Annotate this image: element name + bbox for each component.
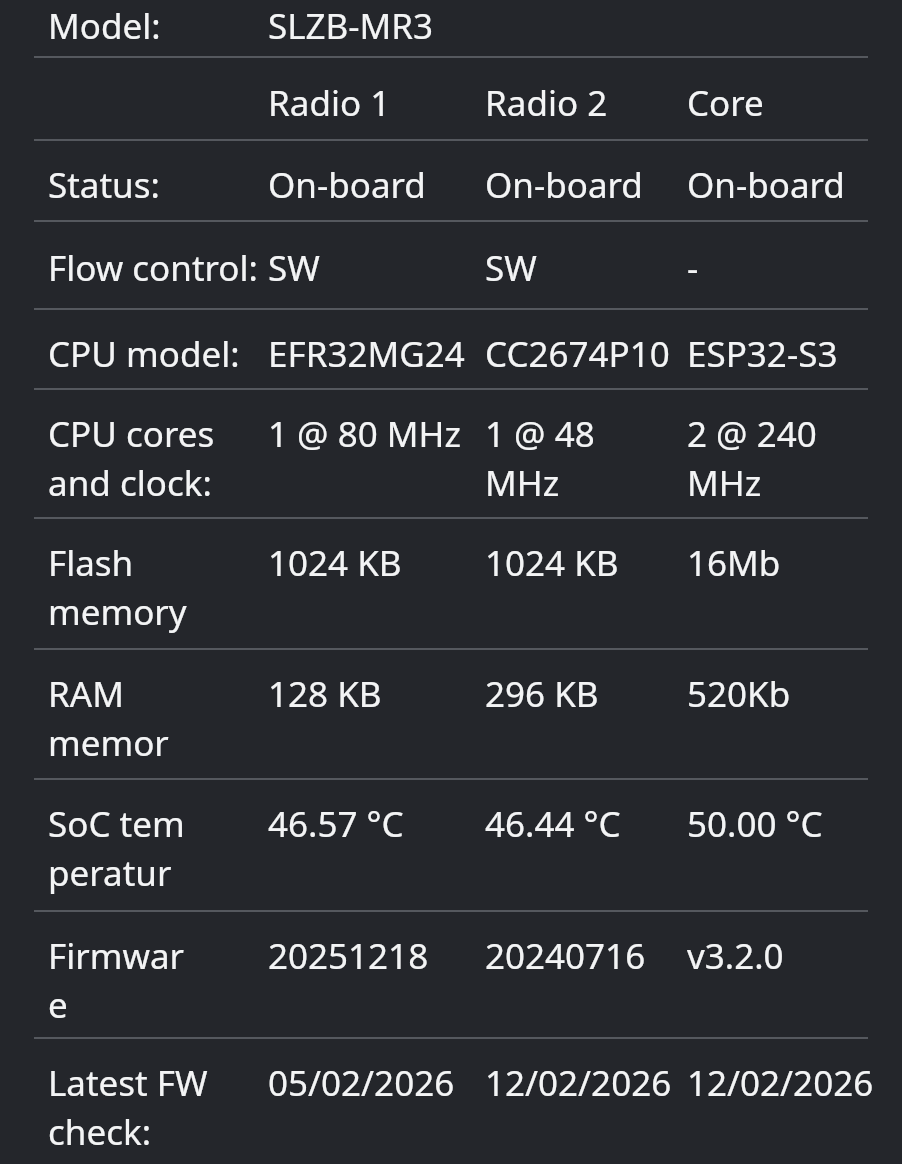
button[interactable]: CPU cores and clock: [0,390,902,517]
staticText: 296 KB [485,670,599,718]
staticText: 12/02/2026 [485,1059,672,1107]
button[interactable]: Latest FW check: [0,1039,902,1164]
staticText: CC2674P10 [485,330,670,378]
staticText: Status: [48,161,160,209]
staticText: 128 KB [268,670,382,718]
button[interactable]: RAM memory: [0,650,902,778]
staticText: Model: [48,2,161,50]
button[interactable]: SoC temperature: [0,780,902,910]
staticText: Radio 1 [268,79,391,127]
button[interactable]: CPU model: [0,310,902,388]
staticText: SLZB-MR3 [268,2,434,50]
staticText: 1 @ 80 MHz [268,410,461,458]
button[interactable]: Status: [0,141,902,220]
staticText: SW [485,244,537,292]
staticText: RAM memory: [48,670,178,766]
staticText: CPU cores and clock: [48,410,223,506]
staticText: CPU model: [48,330,240,378]
staticText: 16Mb [687,539,781,587]
staticText: 520Kb [687,670,791,718]
staticText: 50.00 °C [687,800,823,848]
staticText: SW [268,244,320,292]
button[interactable]: Firmware version: [0,912,902,1037]
button[interactable]: Flash memory: [0,519,902,648]
staticText: Latest FW check: [48,1059,213,1155]
staticText: 1024 KB [268,539,402,587]
staticText: On-board [268,161,426,209]
staticText: On-board [687,161,845,209]
staticText: EFR32MG24 [268,330,465,378]
staticText: Flash memory: [48,539,188,635]
button[interactable]: Model: [0,0,902,56]
staticText: Core [687,79,764,127]
staticText: 2 @ 240 MHz [687,410,837,506]
staticText: 1024 KB [485,539,619,587]
staticText: 20240716 [485,932,646,980]
staticText: v3.2.0 [687,932,784,980]
button[interactable]: Radio 1 [0,58,902,139]
staticText: 1 @ 48 MHz [485,410,595,506]
staticText: Firmware version: [48,932,203,1028]
staticText: Flow control: [48,244,258,292]
staticText: 12/02/2026 [687,1059,874,1107]
staticText: 05/02/2026 [268,1059,455,1107]
staticText: 46.57 °C [268,800,404,848]
staticText: SoC temperature: [48,800,188,896]
staticText: - [687,244,699,292]
staticText: ESP32-S3 [687,330,838,378]
button[interactable]: Flow control: [0,222,902,308]
staticText: On-board [485,161,643,209]
staticText: 46.44 °C [485,800,621,848]
staticText: Radio 2 [485,79,608,127]
staticText: 20251218 [268,932,429,980]
